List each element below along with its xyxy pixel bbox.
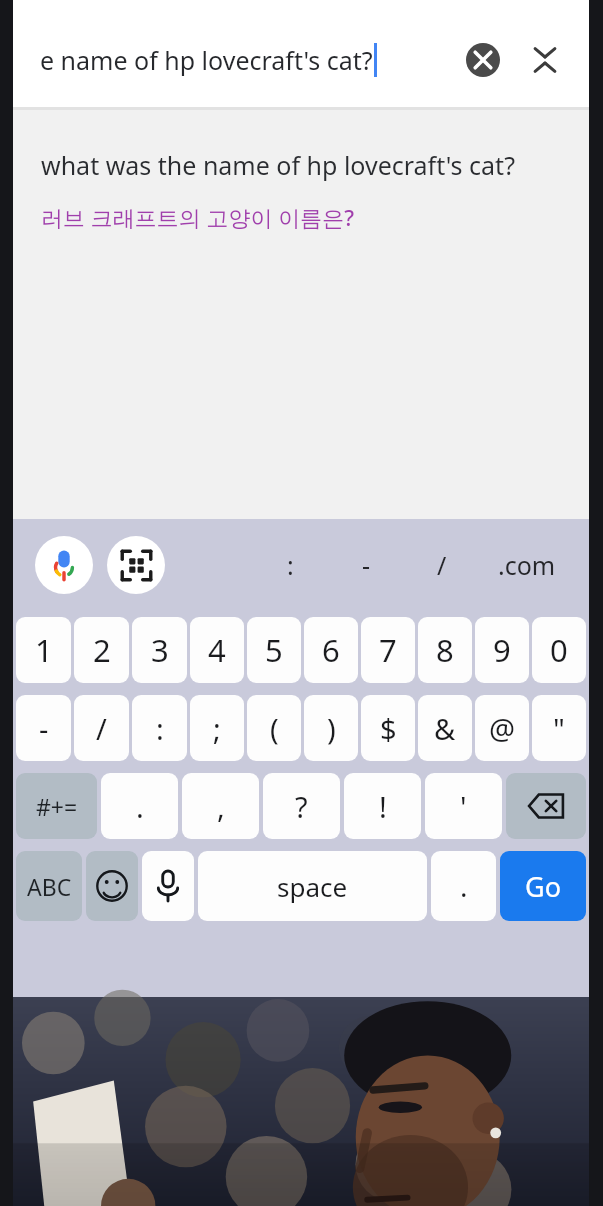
staticText: .com (498, 548, 556, 582)
button[interactable]: Google Lens (107, 536, 165, 594)
button[interactable]: Voice search (35, 536, 93, 594)
button[interactable]: 0 (532, 617, 586, 683)
staticText: : (156, 709, 164, 748)
staticText: 5 (265, 629, 283, 671)
staticText: & (434, 709, 456, 748)
button[interactable]: / (74, 695, 129, 761)
staticText: ' (460, 787, 467, 826)
button[interactable]: : (132, 695, 187, 761)
button[interactable]: what was the name of hp lovecraft's cat? (13, 148, 589, 182)
button[interactable]: .com (483, 532, 571, 598)
staticText: 7 (379, 629, 397, 671)
staticText: 1 (35, 629, 53, 671)
staticText: . (136, 787, 144, 826)
staticText: @ (489, 709, 516, 748)
staticText: $ (380, 709, 397, 748)
staticText: 8 (436, 629, 454, 671)
button[interactable]: ? (263, 773, 340, 839)
button[interactable]: Go (500, 851, 586, 921)
staticText: Go (525, 868, 561, 905)
button[interactable]: #+= (16, 773, 97, 839)
staticText: - (39, 709, 49, 748)
staticText: 2 (93, 629, 111, 671)
staticText: what was the name of hp lovecraft's cat? (41, 148, 515, 182)
button[interactable]: ' (425, 773, 502, 839)
button[interactable]: 러브 크래프트의 고양이 이름은? (13, 202, 589, 232)
button[interactable]: 9 (475, 617, 529, 683)
button[interactable]: @ (475, 695, 529, 761)
staticText: : (287, 548, 294, 582)
button[interactable]: . (431, 851, 496, 921)
button[interactable]: . (101, 773, 178, 839)
button[interactable]: Clear query (457, 34, 509, 86)
staticText: e name of hp lovecraft's cat? (40, 43, 373, 77)
staticText: ? (295, 787, 308, 826)
button[interactable]: Collapse (519, 34, 571, 86)
staticText: , (217, 787, 225, 826)
button[interactable]: 6 (304, 617, 358, 683)
button[interactable]: ) (304, 695, 358, 761)
button[interactable]: Backspace (506, 773, 586, 839)
staticText: #+= (36, 791, 78, 822)
button[interactable]: Voice input (142, 851, 194, 921)
staticText: / (437, 548, 447, 582)
staticText: 러브 크래프트의 고양이 이름은? (41, 202, 354, 232)
button[interactable]: 1 (16, 617, 71, 683)
staticText: space (277, 869, 348, 904)
staticText: ABC (27, 871, 72, 902)
button[interactable]: - (16, 695, 71, 761)
staticText: 3 (151, 629, 169, 671)
button[interactable]: : (261, 532, 319, 598)
button[interactable]: / (413, 532, 471, 598)
button[interactable]: 3 (132, 617, 187, 683)
button[interactable]: 7 (361, 617, 415, 683)
staticText: 6 (322, 629, 340, 671)
button[interactable]: ; (190, 695, 244, 761)
button[interactable]: ABC (16, 851, 82, 921)
button[interactable]: 2 (74, 617, 129, 683)
staticText: ; (213, 709, 221, 748)
staticText: 0 (550, 629, 568, 671)
button[interactable]: " (532, 695, 586, 761)
staticText: " (553, 709, 565, 748)
button[interactable]: & (418, 695, 472, 761)
button[interactable]: space (198, 851, 427, 921)
button[interactable]: ( (247, 695, 301, 761)
button[interactable]: Emoji (86, 851, 138, 921)
staticText: ! (379, 787, 387, 826)
button[interactable]: $ (361, 695, 415, 761)
button[interactable]: 4 (190, 617, 244, 683)
staticText: . (460, 867, 468, 905)
button[interactable]: , (182, 773, 259, 839)
button[interactable]: - (337, 532, 395, 598)
button[interactable]: 5 (247, 617, 301, 683)
staticText: ( (270, 709, 279, 748)
staticText: / (96, 709, 107, 748)
staticText: - (362, 548, 371, 582)
button[interactable]: 8 (418, 617, 472, 683)
staticText: 9 (493, 629, 511, 671)
staticText: ) (327, 709, 336, 748)
staticText: 4 (208, 629, 226, 671)
button[interactable]: ! (344, 773, 421, 839)
